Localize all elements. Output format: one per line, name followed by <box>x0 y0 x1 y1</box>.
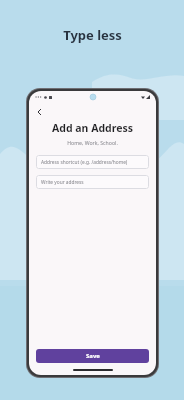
staticText: Save <box>86 352 100 360</box>
button[interactable]: Save <box>36 349 149 363</box>
button[interactable]: Back <box>34 106 45 117</box>
button[interactable]: Write your address <box>36 175 149 189</box>
button[interactable]: Address shortcut (e.g. /address/home) <box>36 155 149 169</box>
staticText: Type less <box>63 26 122 44</box>
staticText: Home, Work, School. <box>29 139 156 146</box>
staticText: Add an Address <box>29 121 156 135</box>
staticText: Write your address <box>41 179 84 186</box>
staticText: Address shortcut (e.g. /address/home) <box>41 159 128 166</box>
